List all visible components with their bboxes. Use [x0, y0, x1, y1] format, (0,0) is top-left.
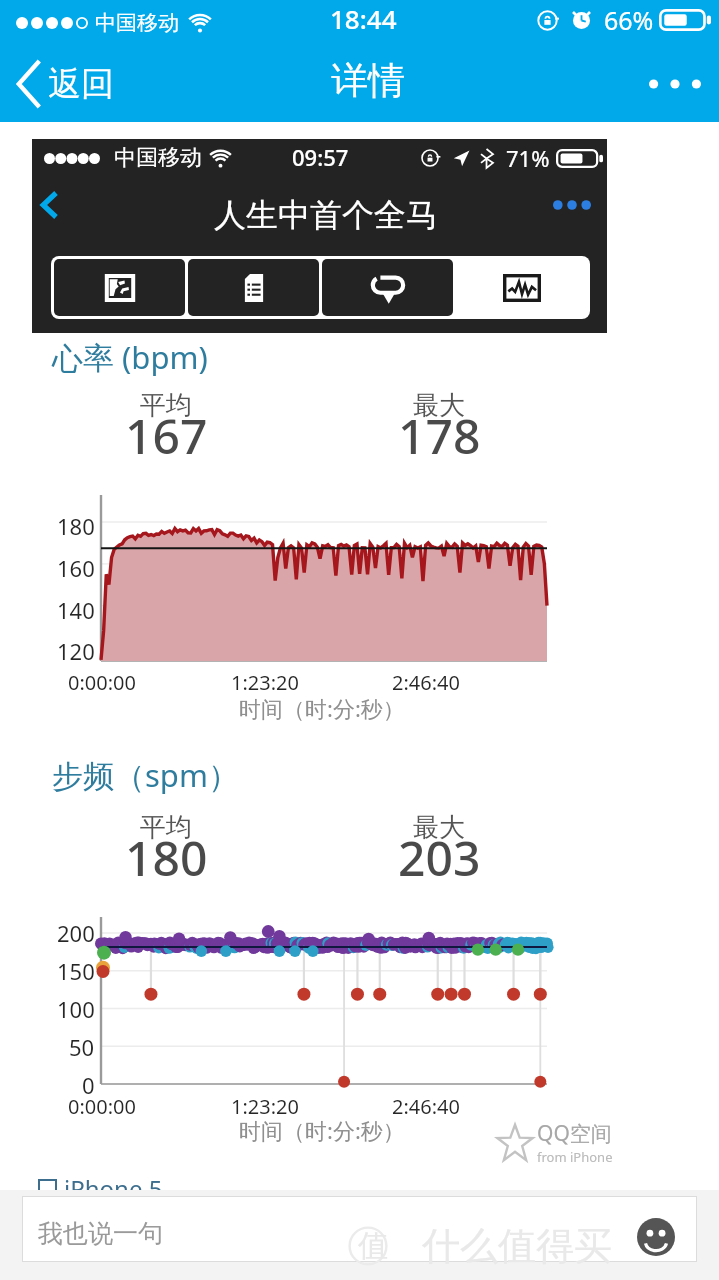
staticText: QQ空间 — [537, 1119, 612, 1148]
staticText: 步频（spm） — [52, 754, 239, 796]
staticText: 时间（时:分:秒） — [239, 1115, 405, 1145]
staticText: 平均 — [140, 389, 192, 422]
staticText: 100 — [57, 994, 95, 1024]
staticText: 160 — [57, 553, 95, 583]
staticText: 人生中首个全马 — [214, 195, 438, 235]
staticText: 中国移动 — [114, 144, 202, 172]
staticText: 0:00:00 — [68, 669, 136, 696]
staticText: 150 — [57, 956, 95, 986]
staticText: 140 — [57, 595, 95, 625]
button[interactable]: Emoji — [637, 1218, 675, 1256]
staticText: 120 — [57, 636, 95, 666]
staticText: 心率 (bpm) — [52, 336, 208, 378]
staticText: 什么值得买 — [422, 1222, 612, 1270]
staticText: 2:46:40 — [392, 1093, 460, 1120]
button[interactable]: Map — [54, 259, 185, 316]
staticText: 178 — [398, 403, 481, 468]
staticText: 180 — [125, 825, 208, 890]
staticText: 18:44 — [330, 1, 397, 36]
staticText: 中国移动 — [95, 10, 179, 36]
staticText: 2:46:40 — [392, 669, 460, 696]
staticText: 66% — [604, 3, 654, 37]
button[interactable]: More — [543, 181, 601, 229]
staticText: 200 — [57, 918, 95, 948]
staticText: 最大 — [413, 811, 465, 844]
staticText: 平均 — [140, 811, 192, 844]
button[interactable]: Charts — [456, 259, 587, 316]
button[interactable]: 我也说一句 — [22, 1196, 697, 1262]
staticText: 180 — [57, 511, 95, 541]
staticText: 详情 — [331, 57, 405, 104]
staticText: iPhone 5 — [64, 1172, 163, 1205]
staticText: 167 — [125, 403, 208, 468]
staticText: 0:00:00 — [68, 1093, 136, 1120]
staticText: from iPhone — [537, 1148, 613, 1166]
button[interactable]: Details — [188, 259, 319, 316]
staticText: 203 — [398, 825, 481, 890]
staticText: 返回 — [48, 63, 114, 105]
staticText: 我也说一句 — [38, 1218, 163, 1249]
staticText: 50 — [69, 1032, 95, 1062]
button[interactable]: Back — [32, 177, 88, 233]
staticText: 71% — [506, 143, 550, 173]
staticText: 09:57 — [292, 142, 349, 172]
button[interactable]: Laps — [322, 259, 453, 316]
staticText: 1:23:20 — [231, 669, 299, 696]
staticText: 0 — [82, 1070, 95, 1100]
staticText: 值 — [358, 1227, 388, 1265]
staticText: 1:23:20 — [231, 1093, 299, 1120]
staticText: 时间（时:分:秒） — [239, 693, 405, 723]
button[interactable]: 返回 — [15, 59, 114, 109]
staticText: 最大 — [413, 389, 465, 422]
button[interactable]: More options — [643, 56, 707, 112]
